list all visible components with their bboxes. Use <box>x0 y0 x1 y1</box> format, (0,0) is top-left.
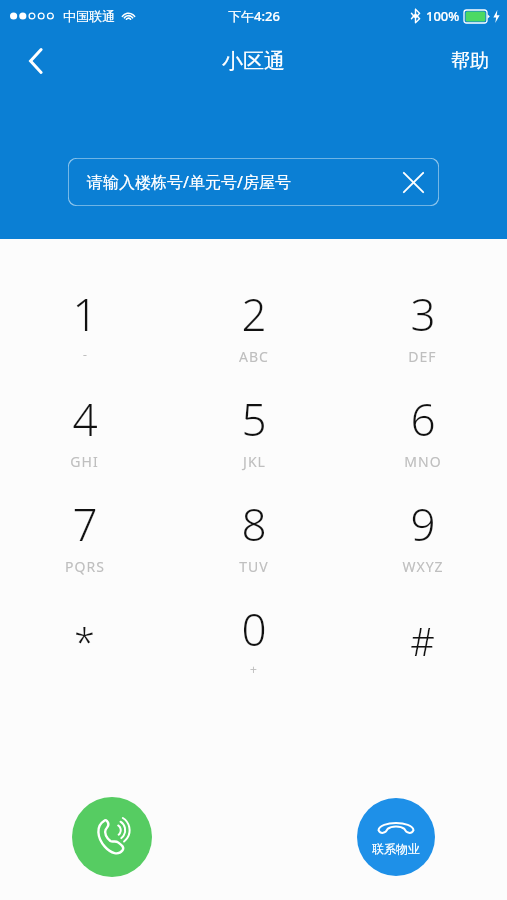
button[interactable]: Clear <box>398 167 428 197</box>
button[interactable]: # <box>338 599 507 704</box>
staticText: 7 <box>72 494 98 554</box>
staticText: 3 <box>410 284 436 344</box>
button[interactable]: 4 <box>0 389 169 494</box>
button[interactable]: 2 <box>169 284 338 389</box>
button[interactable]: 6 <box>338 389 507 494</box>
staticText: 0 <box>241 599 267 659</box>
staticText: 下午4:26 <box>228 7 280 25</box>
staticText: TUV <box>239 557 269 576</box>
staticText: MNO <box>404 452 442 471</box>
button[interactable]: 1 <box>0 284 169 389</box>
button[interactable]: * <box>0 599 169 704</box>
staticText: 6 <box>410 389 436 449</box>
button[interactable]: 7 <box>0 494 169 599</box>
staticText: + <box>250 661 258 677</box>
staticText: 小区通 <box>222 48 285 74</box>
staticText: 联系物业 <box>372 841 420 856</box>
staticText: 1 <box>72 284 98 344</box>
button[interactable]: Back <box>12 37 60 85</box>
staticText: 2 <box>241 284 267 344</box>
button[interactable]: 0 <box>169 599 338 704</box>
staticText: 中国联通 <box>63 8 115 24</box>
staticText: 4 <box>72 389 98 449</box>
button[interactable]: 联系物业 <box>357 798 435 876</box>
button[interactable]: 3 <box>338 284 507 389</box>
staticText: 5 <box>241 389 267 449</box>
staticText: - <box>83 346 88 362</box>
staticText: WXYZ <box>402 557 444 576</box>
staticText: 8 <box>241 494 267 554</box>
staticText: 9 <box>410 494 436 554</box>
button[interactable]: 帮助 <box>443 43 497 79</box>
button[interactable]: 请输入楼栋号/单元号/房屋号 <box>68 158 439 206</box>
staticText: 请输入楼栋号/单元号/房屋号 <box>87 171 291 193</box>
button[interactable]: 5 <box>169 389 338 494</box>
staticText: DEF <box>408 347 437 366</box>
button[interactable]: 8 <box>169 494 338 599</box>
staticText: # <box>410 615 435 667</box>
button[interactable]: 9 <box>338 494 507 599</box>
button[interactable]: Call <box>72 797 152 877</box>
staticText: * <box>74 615 95 667</box>
staticText: JKL <box>243 452 266 471</box>
staticText: PQRS <box>65 557 105 576</box>
staticText: 100% <box>426 7 460 25</box>
staticText: 帮助 <box>451 49 489 73</box>
staticText: ABC <box>239 347 269 366</box>
staticText: GHI <box>70 452 99 471</box>
